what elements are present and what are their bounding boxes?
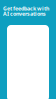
staticText: Get feedback with <box>3 5 49 12</box>
staticText: AI conversations <box>3 10 46 17</box>
